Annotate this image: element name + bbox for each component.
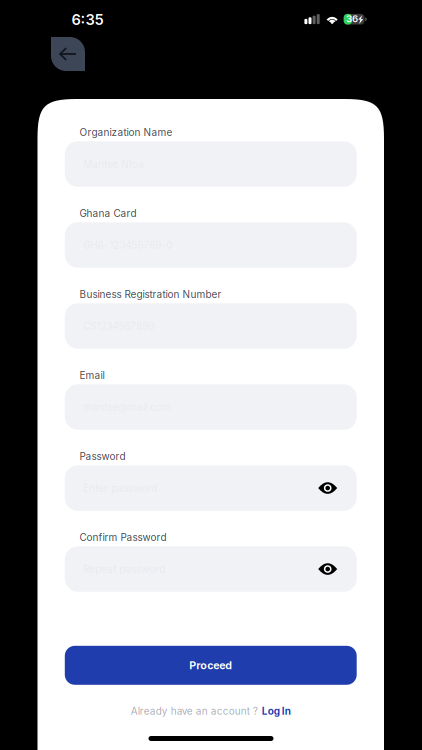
staticText: Proceed — [189, 659, 232, 672]
staticText: Ghana Card — [80, 207, 137, 219]
staticText: Log In — [262, 705, 291, 717]
button[interactable]: Show password — [318, 481, 338, 495]
staticText: Confirm Password — [80, 531, 167, 543]
staticText: Password — [80, 450, 126, 462]
staticText: 36 — [346, 13, 358, 24]
button[interactable]: Proceed — [65, 646, 357, 685]
button[interactable]: Back — [51, 37, 85, 71]
button[interactable]: Show password — [318, 562, 338, 576]
staticText: Business Registration Number — [80, 288, 222, 300]
staticText: 6:35 — [71, 11, 103, 28]
staticText: Already have an account ? — [131, 705, 258, 717]
staticText: Email — [80, 369, 105, 381]
button[interactable]: Already have an account ? — [37, 702, 384, 720]
staticText: Organization Name — [80, 126, 173, 138]
